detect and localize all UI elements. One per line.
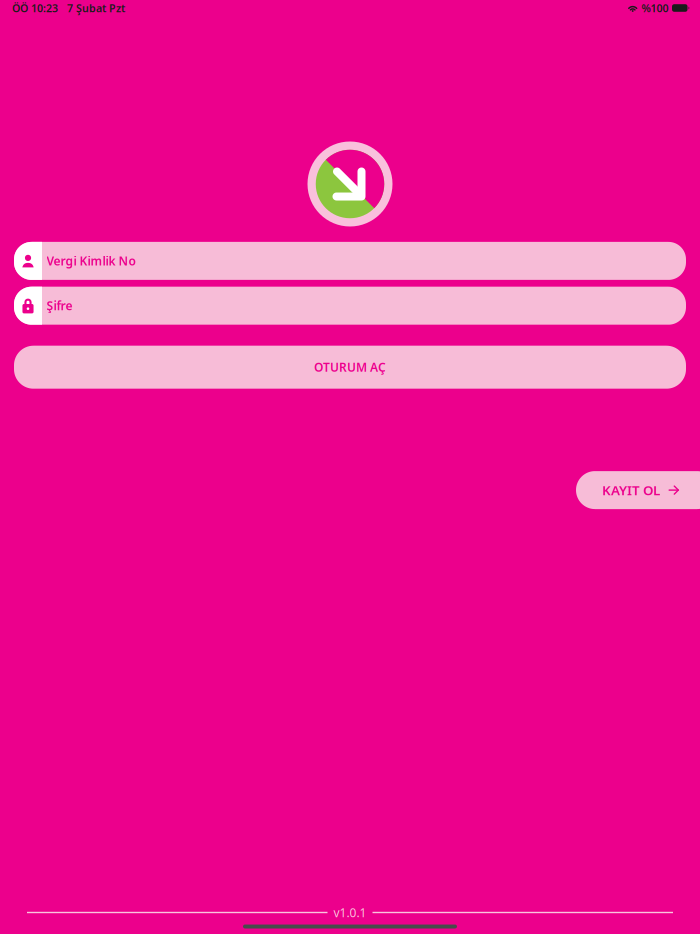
button[interactable]: Vergi Kimlik No [14,242,686,280]
staticText: %100 [641,1,668,15]
button[interactable]: KAYIT OL [576,471,700,509]
staticText: Vergi Kimlik No [46,253,135,269]
staticText: v1.0.1 [333,904,366,920]
staticText: KAYIT OL [602,481,660,499]
staticText: OTURUM AÇ [314,359,386,375]
staticText: Şifre [46,298,72,314]
button[interactable]: Şifre [14,287,686,325]
button[interactable]: OTURUM AÇ [0,346,700,389]
staticText: ÖÖ 10:23 7 Şubat Pzt [12,1,125,15]
